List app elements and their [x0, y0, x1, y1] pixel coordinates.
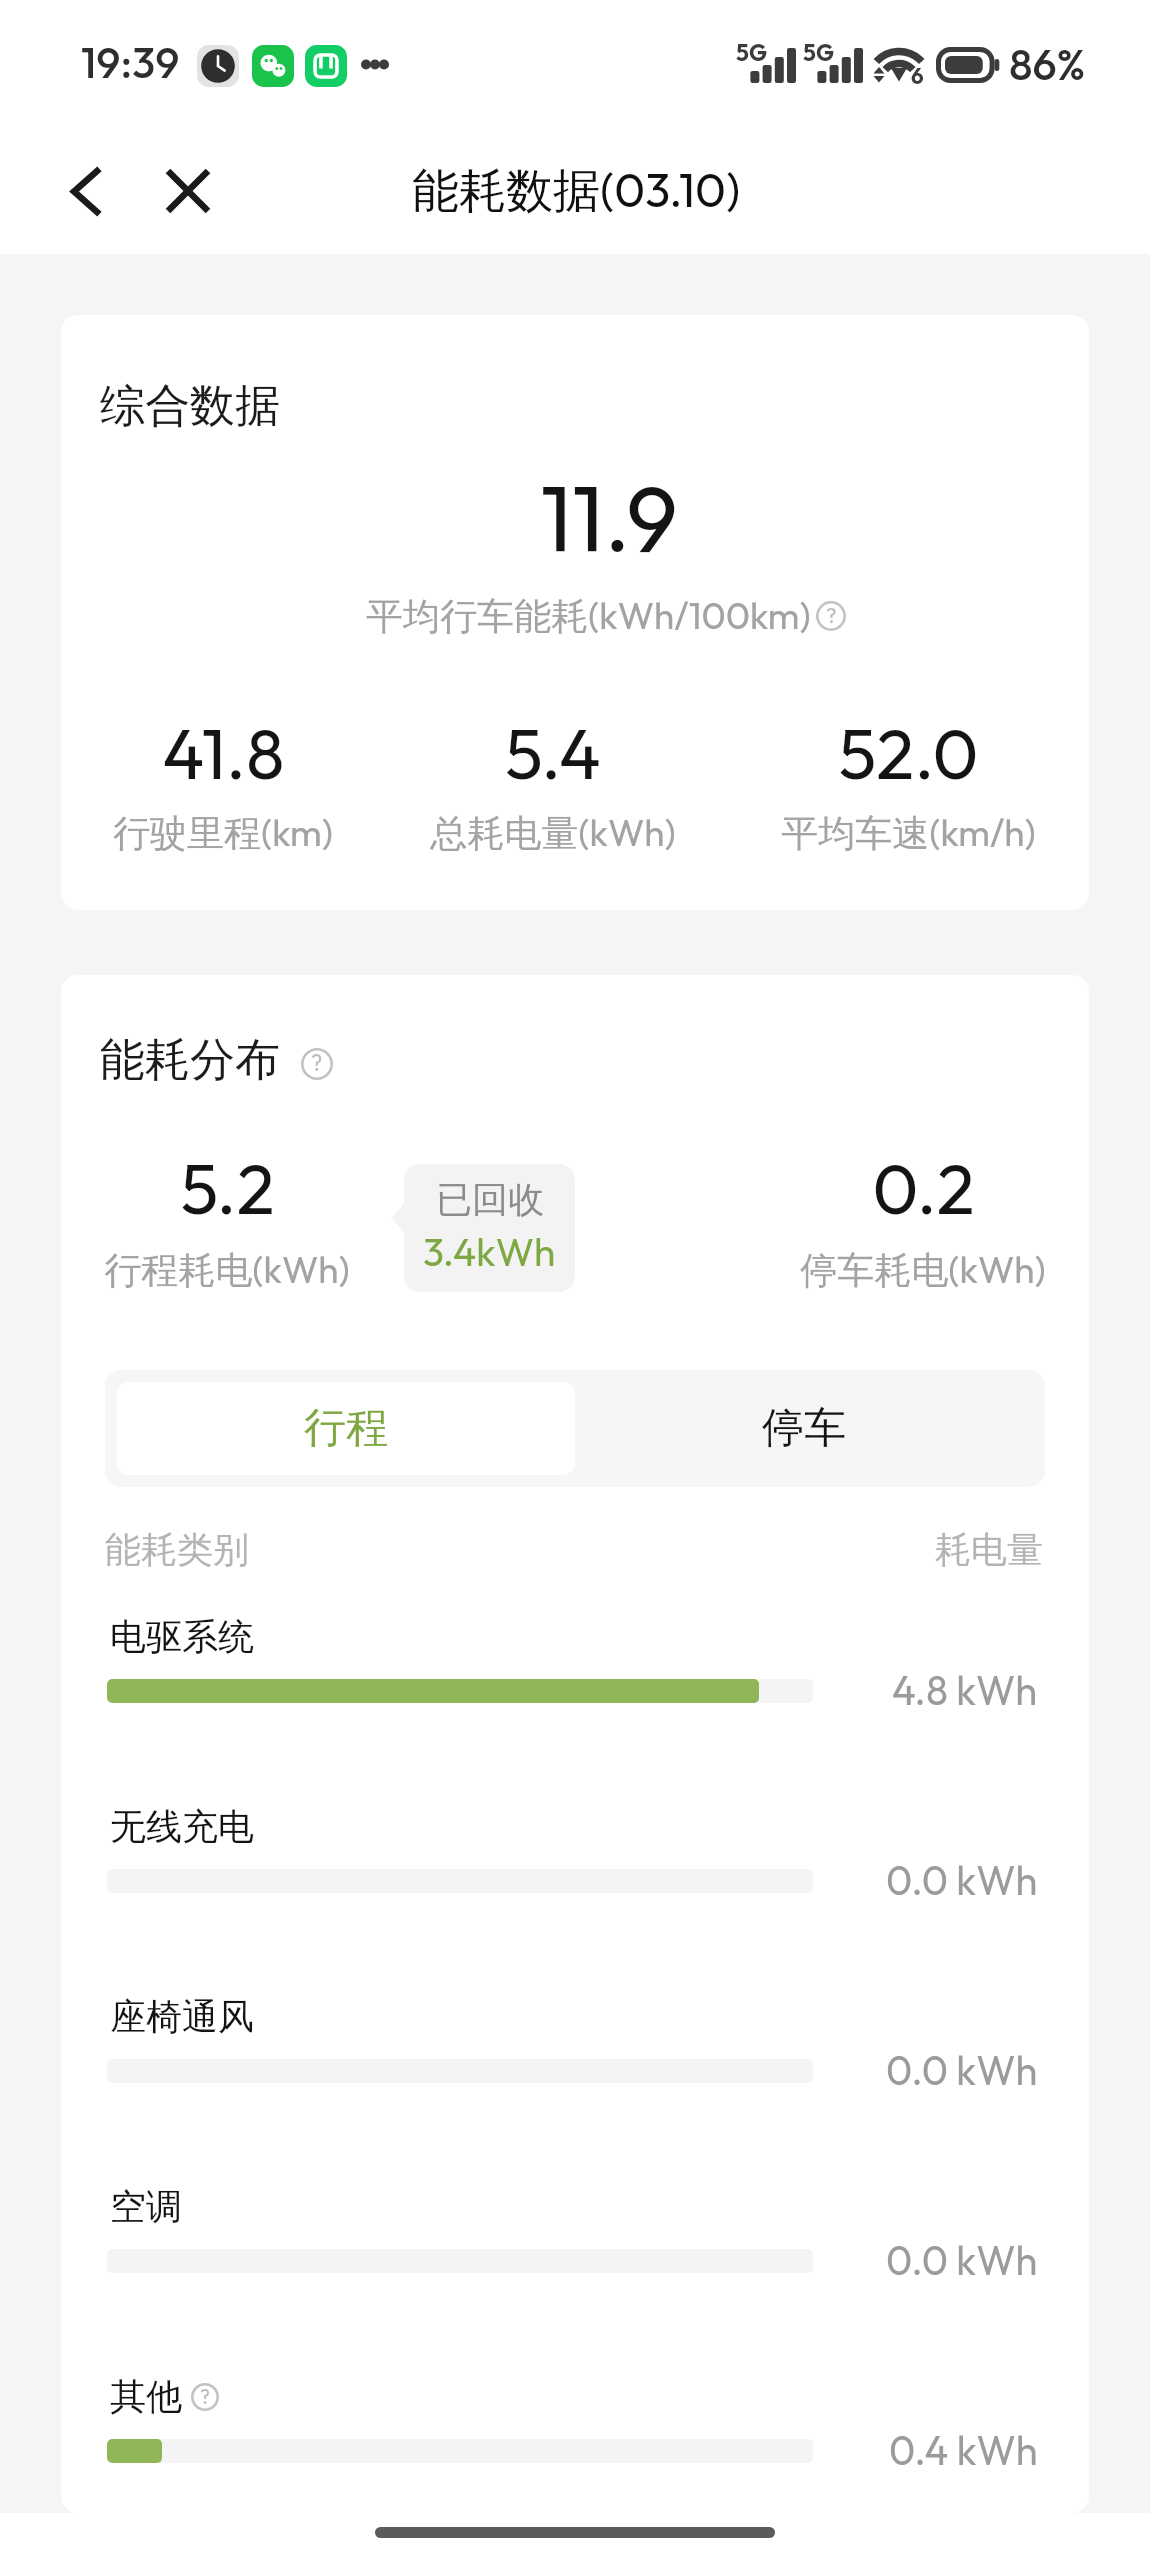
staticText: 3.4kWh	[423, 1227, 556, 1276]
button[interactable]: Close	[148, 151, 228, 231]
staticText: 86%	[1009, 37, 1086, 91]
staticText: 其他	[110, 2374, 182, 2419]
staticText: 总耗电量(kWh)	[430, 809, 676, 857]
staticText: 行驶里程(km)	[113, 809, 333, 857]
button[interactable]: 其他	[61, 2359, 1089, 2499]
staticText: 5.4	[505, 709, 601, 797]
button[interactable]: 电驱系统	[61, 1599, 1089, 1739]
staticText: 空调	[110, 2184, 182, 2229]
staticText: 5.2	[180, 1144, 275, 1232]
staticText: 0.0 kWh	[886, 1855, 1038, 1905]
staticText: ?	[200, 2384, 210, 2409]
staticText: 停车	[762, 1402, 846, 1455]
staticText: 电驱系统	[110, 1614, 254, 1659]
staticText: 0.0 kWh	[886, 2235, 1038, 2285]
button[interactable]: 空调	[61, 2169, 1089, 2309]
button[interactable]: Back	[45, 151, 125, 231]
staticText: 能耗分布	[100, 1032, 280, 1089]
button[interactable]: 停车	[575, 1382, 1033, 1475]
staticText: 耗电量	[935, 1527, 1043, 1572]
staticText: 41.8	[162, 709, 285, 797]
button[interactable]: More information	[301, 1048, 333, 1080]
staticText: 无线充电	[110, 1804, 254, 1849]
staticText: 行程耗电(kWh)	[104, 1246, 350, 1294]
staticText: ?	[826, 602, 837, 628]
staticText: 0.0 kWh	[886, 2045, 1038, 2095]
staticText: 行程	[304, 1402, 388, 1455]
staticText: 综合数据	[100, 378, 280, 435]
button[interactable]: More information	[191, 2383, 219, 2411]
staticText: 平均车速(km/h)	[781, 809, 1036, 857]
staticText: 能耗类别	[105, 1527, 249, 1572]
staticText: 平均行车能耗(kWh/100km)	[366, 592, 811, 640]
staticText: 52.0	[838, 709, 979, 797]
staticText: 0.2	[872, 1144, 975, 1232]
staticText: 5G	[736, 38, 767, 67]
staticText: 19:39	[81, 35, 180, 89]
staticText: 11.9	[540, 459, 678, 575]
staticText: 已回收	[436, 1177, 544, 1222]
staticText: 座椅通风	[110, 1994, 254, 2039]
button[interactable]: More information	[816, 601, 846, 631]
staticText: 停车耗电(kWh)	[800, 1246, 1046, 1294]
staticText: 4.8 kWh	[892, 1665, 1038, 1715]
button[interactable]: 无线充电	[61, 1789, 1089, 1929]
button[interactable]: 行程	[117, 1382, 575, 1475]
button[interactable]: 座椅通风	[61, 1979, 1089, 2119]
staticText: 能耗数据(03.10)	[412, 160, 741, 221]
staticText: 5G	[803, 38, 834, 67]
staticText: ?	[311, 1049, 323, 1077]
staticText: 0.4 kWh	[889, 2425, 1038, 2475]
staticText: 6	[911, 62, 924, 90]
